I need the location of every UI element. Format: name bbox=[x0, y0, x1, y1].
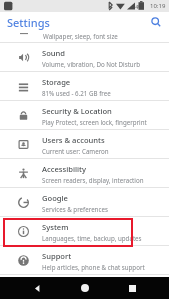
staticText: Current user: Cameron bbox=[42, 147, 109, 155]
staticText: Support bbox=[42, 251, 72, 261]
button[interactable]: Sound bbox=[0, 43, 169, 72]
staticText: Screen readers, display, interaction con… bbox=[42, 176, 163, 184]
staticText: Sound bbox=[42, 48, 66, 58]
staticText: Volume, vibration, Do Not Disturb bbox=[42, 60, 141, 68]
staticText: Google bbox=[42, 193, 68, 203]
button[interactable]: Storage bbox=[0, 72, 169, 101]
button[interactable]: System bbox=[0, 217, 169, 246]
button[interactable]: Accessibility bbox=[0, 159, 169, 188]
staticText: Languages, time, backup, updates bbox=[42, 234, 142, 242]
staticText: 81% used - 6.21 GB free bbox=[42, 89, 111, 97]
staticText: Storage bbox=[42, 77, 71, 87]
staticText: Settings bbox=[7, 15, 50, 30]
staticText: System bbox=[42, 222, 69, 232]
staticText: 84% bbox=[132, 3, 143, 10]
staticText: Play Protect, screen lock, fingerprint bbox=[42, 118, 147, 126]
staticText: Wallpaper, sleep, font size bbox=[43, 32, 118, 40]
button[interactable]: Recent apps bbox=[122, 278, 142, 298]
button[interactable]: Security & Location bbox=[0, 101, 169, 130]
staticText: Services & preferences bbox=[42, 205, 108, 213]
button[interactable]: Support bbox=[0, 246, 169, 275]
button[interactable]: Back bbox=[27, 278, 47, 298]
staticText: Accessibility bbox=[42, 164, 86, 174]
button[interactable]: Search settings bbox=[147, 13, 165, 31]
staticText: Security & Location bbox=[42, 106, 112, 116]
button[interactable]: Users & accounts bbox=[0, 130, 169, 159]
button[interactable]: Google bbox=[0, 188, 169, 217]
button[interactable]: Home bbox=[75, 278, 95, 298]
staticText: Users & accounts bbox=[42, 135, 105, 145]
staticText: Help articles, phone & chat support bbox=[42, 263, 145, 271]
staticText: 10:19 bbox=[150, 2, 166, 10]
button[interactable]: Wallpaper, sleep, font size bbox=[0, 32, 169, 43]
